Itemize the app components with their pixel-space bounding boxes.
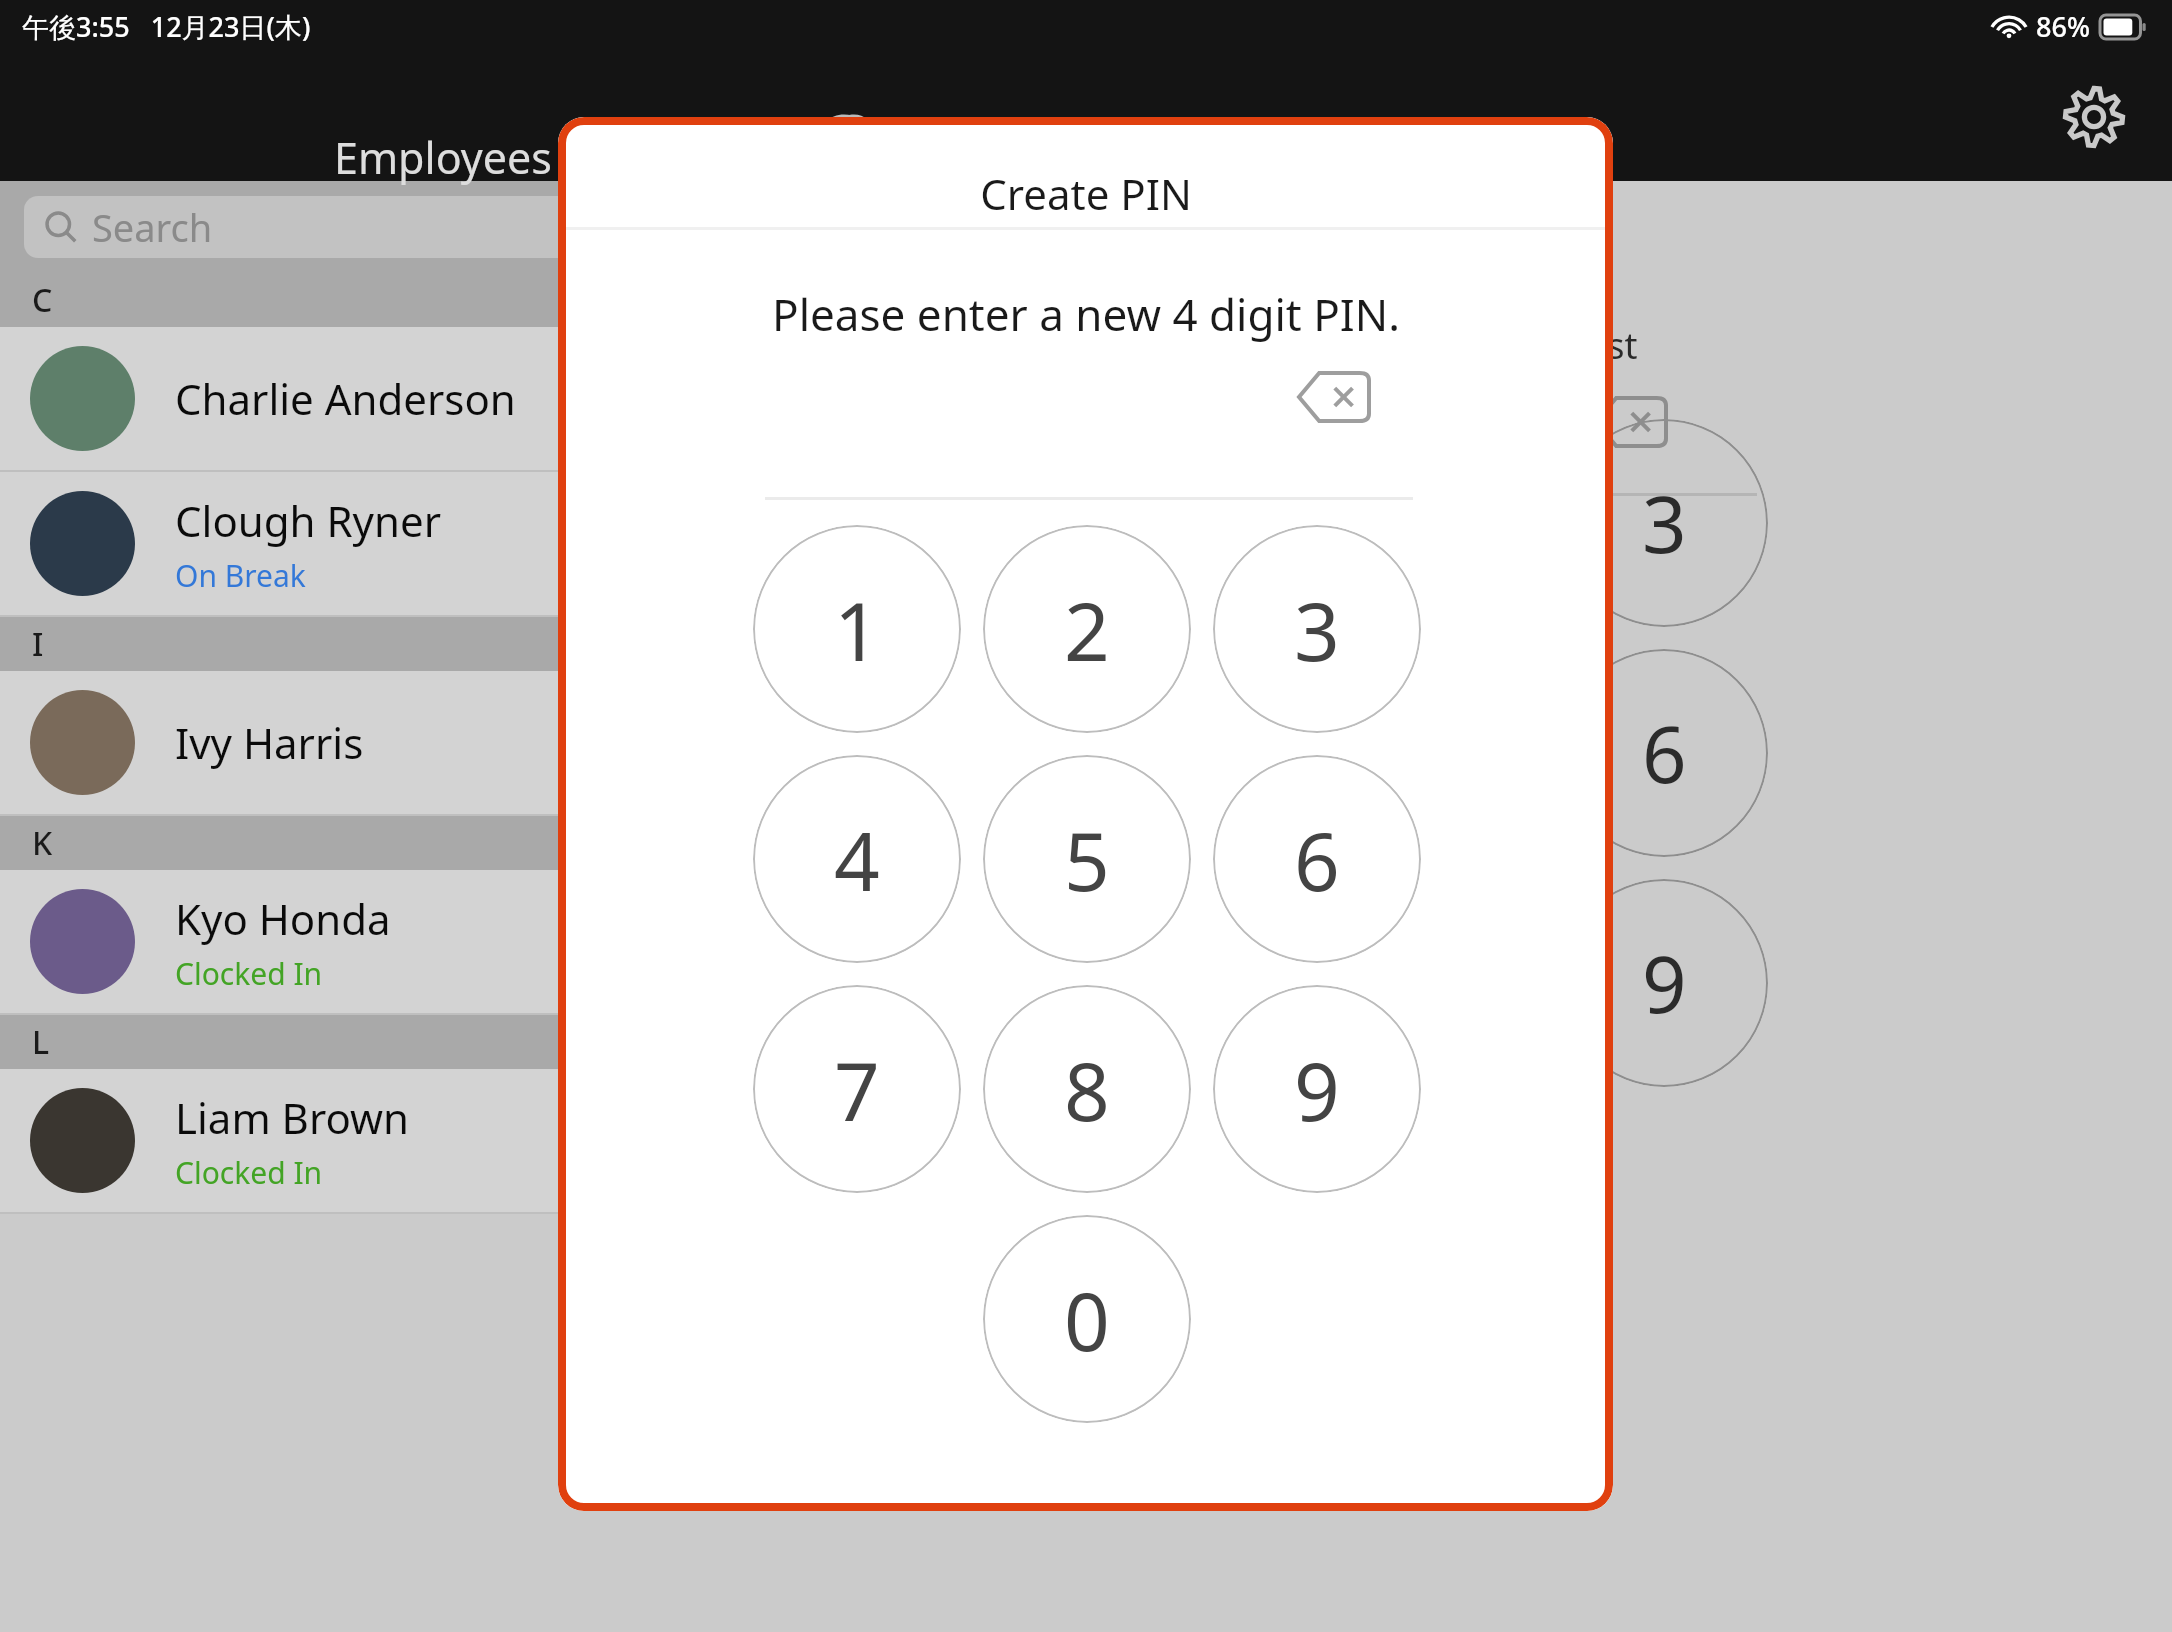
staticText: 6 (1294, 805, 1340, 914)
staticText: K (32, 821, 53, 865)
staticText: On Break (175, 555, 306, 596)
button[interactable]: Ivy Harris (0, 671, 849, 816)
button[interactable]: Charlie Anderson (0, 327, 849, 472)
staticText: Create PIN (980, 165, 1192, 222)
staticText: 2 (1064, 575, 1110, 684)
staticText: 0 (1064, 1265, 1110, 1374)
staticText: 6 (1642, 700, 1687, 806)
staticText: Search (92, 201, 213, 253)
button[interactable]: 3 (1213, 525, 1421, 733)
button[interactable]: 4 (1100, 649, 1308, 857)
staticText: 午後3:55 12月23日(木) (22, 8, 311, 45)
staticText: 9 (1294, 1035, 1340, 1144)
staticText: 9 (1642, 930, 1687, 1036)
staticText: Or select your name from the list (1081, 321, 1638, 370)
staticText: employment hero (889, 104, 1333, 175)
button[interactable]: Settings (2056, 79, 2132, 155)
staticText: Clocked In (175, 1152, 323, 1193)
button[interactable]: Clough Ryner (0, 472, 849, 617)
button[interactable]: Backspace (1297, 371, 1371, 423)
staticText: L (32, 1020, 50, 1064)
button[interactable]: 0 (983, 1215, 1191, 1423)
staticText: 7 (834, 1035, 880, 1144)
staticText: Please enter a new 4 digit PIN. (772, 284, 1400, 344)
staticText: Go (1255, 1172, 1335, 1254)
staticText: 8 (1064, 1035, 1110, 1144)
staticText: Charlie Anderson (175, 370, 516, 427)
staticText: Clocked In (175, 953, 323, 994)
staticText: 86% (2036, 8, 2090, 45)
button[interactable]: 3 (1560, 419, 1768, 627)
staticText: 5 (1064, 805, 1110, 914)
button[interactable]: 1 (1100, 419, 1308, 627)
button[interactable]: Employees (334, 128, 552, 187)
button[interactable]: 5 (1330, 649, 1538, 857)
button[interactable]: Kyo Honda (0, 870, 849, 1015)
staticText: Liam Brown (175, 1089, 409, 1146)
button[interactable]: 8 (983, 985, 1191, 1193)
button[interactable]: 4 (753, 755, 961, 963)
staticText: 4 (834, 805, 880, 914)
button[interactable]: 9 (1560, 879, 1768, 1087)
button[interactable]: 8 (1330, 879, 1538, 1087)
button[interactable]: 6 (1213, 755, 1421, 963)
staticText: Enter your PIN (1179, 231, 1537, 302)
button[interactable]: 9 (1213, 985, 1421, 1193)
button[interactable]: Liam Brown (0, 1069, 849, 1214)
staticText: Ivy Harris (175, 714, 364, 771)
button[interactable]: 2 (983, 525, 1191, 733)
staticText: C (32, 278, 53, 322)
staticText: Kyo Honda (175, 890, 391, 947)
staticText: 1 (834, 575, 880, 684)
button[interactable]: 7 (753, 985, 961, 1193)
staticText: Clough Ryner (175, 492, 441, 549)
button[interactable]: Search (24, 196, 825, 258)
staticText: 3 (1642, 470, 1687, 576)
staticText: 3 (1294, 575, 1340, 684)
button[interactable]: 5 (983, 755, 1191, 963)
staticText: 1 (1182, 470, 1227, 576)
button[interactable]: 1 (753, 525, 961, 733)
button[interactable]: Go (1191, 1109, 1399, 1317)
button[interactable]: 6 (1560, 649, 1768, 857)
button[interactable]: 2 (1330, 419, 1538, 627)
staticText: I (32, 622, 44, 666)
button[interactable]: 7 (1100, 879, 1308, 1087)
